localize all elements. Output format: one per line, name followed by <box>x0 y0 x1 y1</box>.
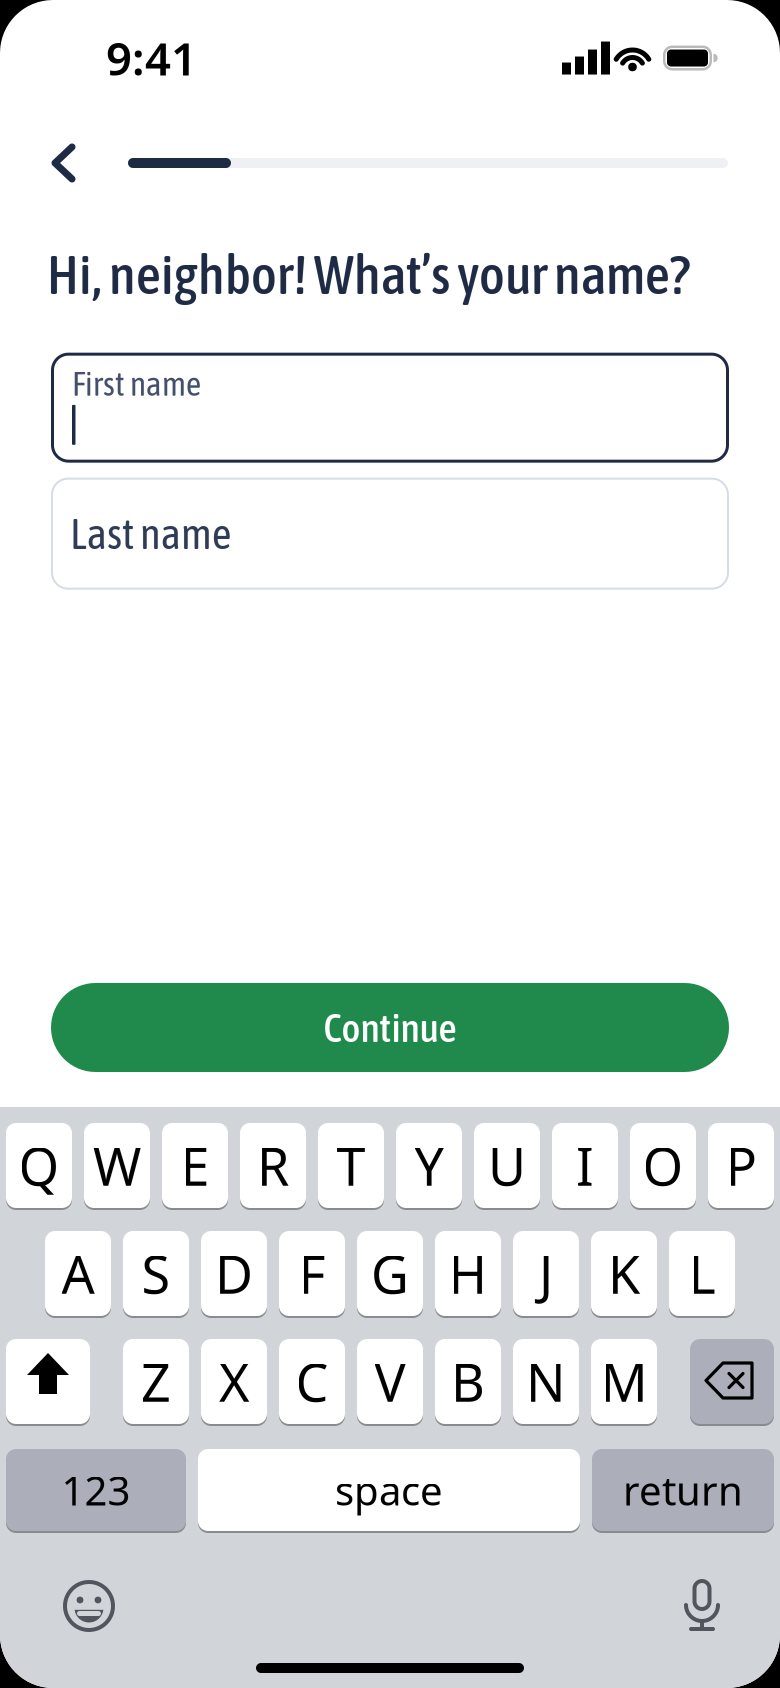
button[interactable]: J <box>513 1230 579 1317</box>
staticText: X <box>219 1347 249 1416</box>
staticText: U <box>488 1131 526 1200</box>
button[interactable]: Z <box>123 1338 189 1425</box>
staticText: Q <box>18 1131 59 1200</box>
button[interactable]: O <box>630 1122 696 1209</box>
button[interactable]: L <box>669 1230 735 1317</box>
button[interactable]: K <box>591 1230 657 1317</box>
staticText: E <box>180 1131 209 1200</box>
staticText: S <box>141 1239 170 1308</box>
staticText: 123 <box>61 1463 130 1516</box>
staticText: space <box>335 1463 443 1516</box>
staticText: O <box>642 1131 683 1200</box>
button[interactable]: M <box>591 1338 657 1425</box>
staticText: L <box>688 1239 715 1308</box>
button[interactable]: H <box>435 1230 501 1317</box>
staticText: M <box>600 1347 647 1416</box>
staticText: H <box>448 1239 487 1308</box>
button[interactable]: Continue <box>51 983 729 1072</box>
staticText: A <box>61 1239 94 1308</box>
staticText: G <box>371 1239 409 1308</box>
button[interactable]: X <box>201 1338 267 1425</box>
button[interactable]: V <box>357 1338 423 1425</box>
button[interactable]: F <box>279 1230 345 1317</box>
staticText: N <box>526 1347 566 1416</box>
button[interactable]: G <box>357 1230 423 1317</box>
button[interactable]: Emoji <box>62 1579 116 1633</box>
button[interactable]: Shift <box>6 1338 90 1425</box>
button[interactable]: A <box>45 1230 111 1317</box>
button[interactable]: space <box>198 1448 580 1532</box>
staticText: D <box>215 1239 253 1308</box>
staticText: J <box>539 1239 553 1308</box>
button[interactable]: First name <box>51 353 729 463</box>
button[interactable]: Dictate <box>676 1579 728 1633</box>
staticText: R <box>257 1131 289 1200</box>
staticText: B <box>451 1347 485 1416</box>
button[interactable]: D <box>201 1230 267 1317</box>
button[interactable]: N <box>513 1338 579 1425</box>
button[interactable]: Back <box>47 143 80 183</box>
button[interactable]: R <box>240 1122 306 1209</box>
button[interactable]: 123 <box>6 1448 186 1532</box>
button[interactable]: C <box>279 1338 345 1425</box>
staticText: K <box>608 1239 640 1308</box>
button[interactable]: T <box>318 1122 384 1209</box>
button[interactable]: Last name <box>51 478 729 590</box>
button[interactable]: B <box>435 1338 501 1425</box>
staticText: Hi, neighbor! What’s your name? <box>47 243 690 306</box>
staticText: Last name <box>70 509 231 558</box>
button[interactable]: Delete <box>690 1338 774 1425</box>
button[interactable]: Y <box>396 1122 462 1209</box>
button[interactable]: W <box>84 1122 150 1209</box>
staticText: T <box>336 1131 365 1200</box>
staticText: Z <box>141 1347 171 1416</box>
button[interactable]: P <box>708 1122 774 1209</box>
button[interactable]: E <box>162 1122 228 1209</box>
button[interactable]: I <box>552 1122 618 1209</box>
button[interactable]: Q <box>6 1122 72 1209</box>
button[interactable]: S <box>123 1230 189 1317</box>
staticText: F <box>298 1239 325 1308</box>
staticText: I <box>576 1131 594 1200</box>
button[interactable]: return <box>592 1448 774 1532</box>
staticText: Continue <box>323 1005 456 1050</box>
staticText: W <box>93 1131 141 1200</box>
staticText: 9:41 <box>106 28 197 88</box>
button[interactable]: U <box>474 1122 540 1209</box>
staticText: First name <box>72 365 201 403</box>
staticText: V <box>374 1347 405 1416</box>
staticText: return <box>623 1463 743 1516</box>
staticText: Y <box>414 1131 443 1200</box>
staticText: P <box>725 1131 756 1200</box>
staticText: C <box>295 1347 328 1416</box>
